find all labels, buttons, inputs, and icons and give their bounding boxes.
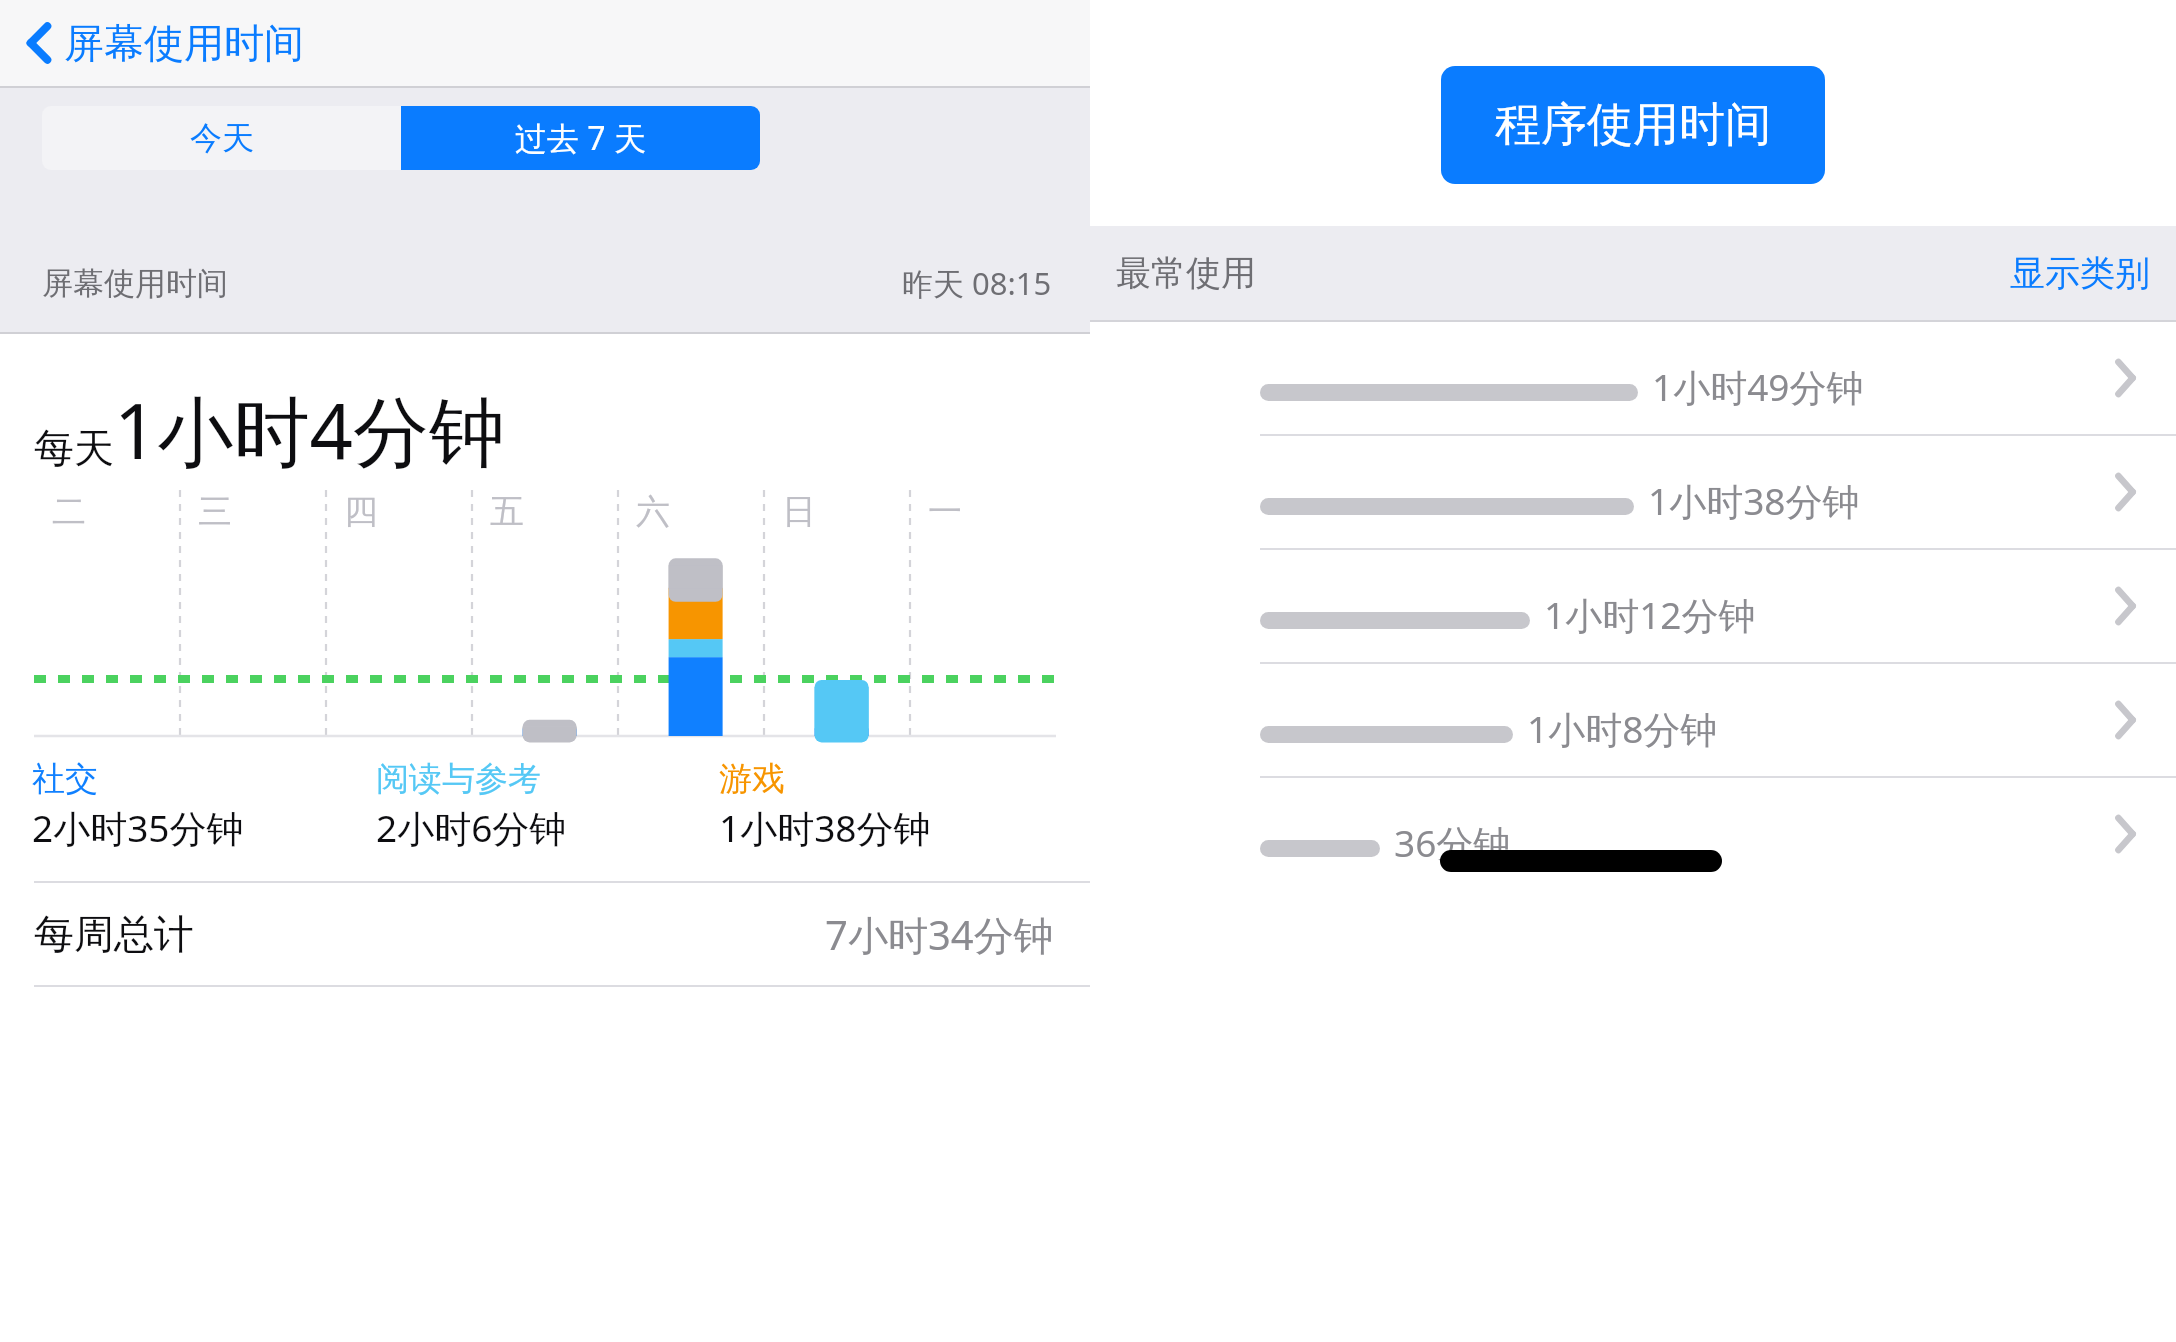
button[interactable]: 阅读与参考 [376, 758, 719, 853]
staticText: 1小时38分钟 [1648, 475, 1860, 526]
staticText: 2小时35分钟 [32, 802, 244, 853]
button[interactable]: 1小时8分钟 [1090, 664, 2176, 776]
staticText: 过去 7 天 [515, 116, 646, 160]
staticText: 屏幕使用时间 [64, 18, 304, 68]
staticText: 日 [782, 490, 816, 533]
staticText: 1小时4分钟 [114, 378, 505, 482]
staticText: 二 [52, 490, 86, 533]
button[interactable]: 36分钟 [1090, 778, 2176, 890]
other: Open app details [2102, 469, 2148, 515]
staticText: 一 [928, 490, 962, 533]
staticText: 程序使用时间 [1495, 96, 1771, 154]
staticText: 社交 [32, 758, 98, 800]
staticText: 五 [490, 490, 524, 533]
staticText: 1小时8分钟 [1527, 703, 1718, 754]
staticText: 每天 [34, 423, 114, 473]
staticText: 最常使用 [1116, 251, 1256, 295]
button[interactable]: 今天 [42, 106, 401, 170]
staticText: 三 [198, 490, 232, 533]
staticText: 1小时38分钟 [719, 802, 931, 853]
staticText: 昨天 08:15 [902, 262, 1052, 304]
other: Open app details [2102, 583, 2148, 629]
button[interactable]: 1小时38分钟 [1090, 436, 2176, 548]
button[interactable]: 1小时12分钟 [1090, 550, 2176, 662]
button[interactable]: 游戏 [719, 758, 1062, 853]
staticText: 2小时6分钟 [376, 802, 567, 853]
staticText: 屏幕使用时间 [42, 264, 228, 303]
other: Open app details [2102, 697, 2148, 743]
staticText: 六 [636, 490, 670, 533]
staticText: 阅读与参考 [376, 758, 541, 800]
staticText: 今天 [190, 118, 254, 158]
button[interactable]: 过去 7 天 [401, 106, 760, 170]
staticText: 每周总计 [34, 909, 194, 959]
button[interactable]: Back [14, 18, 64, 68]
staticText: 显示类别 [2010, 251, 2150, 295]
button[interactable]: 显示类别 [2010, 251, 2150, 295]
staticText: 36分钟 [1394, 817, 1511, 868]
other: Open app details [2102, 811, 2148, 857]
staticText: 游戏 [719, 758, 785, 800]
button[interactable]: 1小时49分钟 [1090, 322, 2176, 434]
button[interactable]: 社交 [32, 758, 376, 853]
button[interactable]: 每周总计 [0, 883, 1090, 985]
button[interactable]: 程序使用时间 [1441, 66, 1825, 184]
staticText: 1小时12分钟 [1544, 589, 1756, 640]
staticText: 7小时34分钟 [825, 907, 1054, 962]
staticText: 1小时49分钟 [1652, 361, 1864, 412]
other: Open app details [2102, 355, 2148, 401]
staticText: 四 [344, 490, 378, 533]
